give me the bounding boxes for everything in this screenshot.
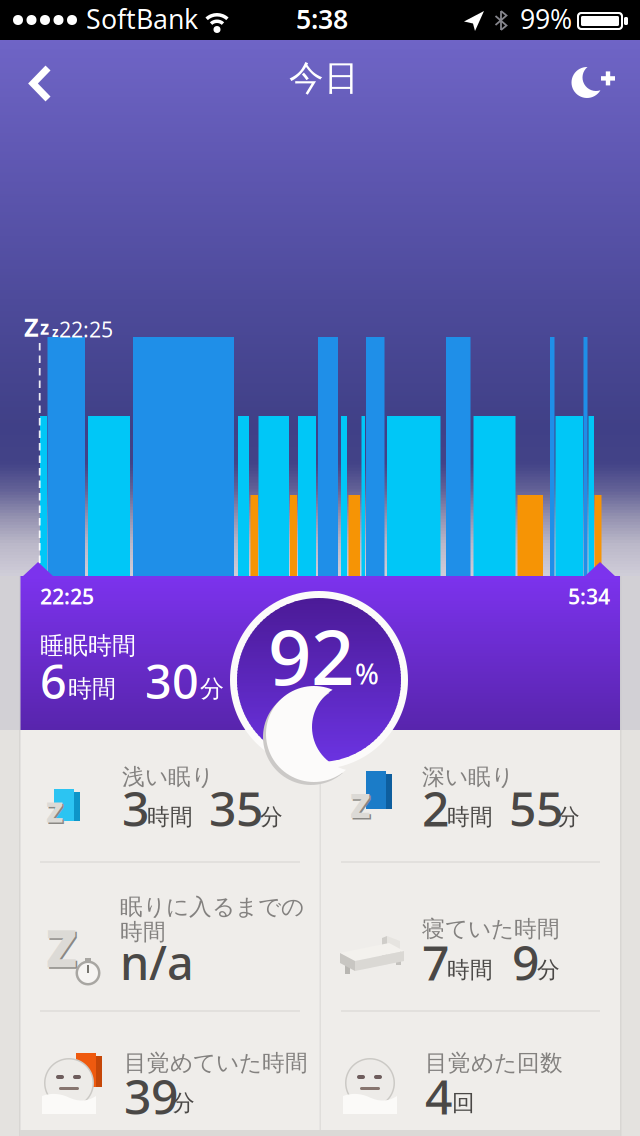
staticText: 浅い眠り	[122, 763, 214, 791]
staticText: Z	[24, 310, 39, 344]
staticText: 寝ていた時間	[422, 915, 560, 943]
staticText: 目覚めていた時間	[124, 1049, 308, 1077]
staticText: 時間	[120, 918, 166, 946]
staticText: 回	[452, 1089, 475, 1117]
staticText: 時間	[147, 803, 193, 831]
staticText: 5:34	[568, 582, 610, 610]
staticText: 分	[537, 956, 560, 984]
staticText: 39	[124, 1064, 178, 1128]
staticText: 22:25	[40, 582, 94, 610]
staticText: %	[355, 655, 379, 692]
staticText: 分	[557, 803, 580, 831]
staticText: 22:25	[59, 315, 113, 343]
staticText: 7	[422, 930, 449, 994]
staticText: 深い眠り	[422, 763, 514, 791]
staticText: Z	[351, 784, 371, 829]
staticText: 目覚めた回数	[425, 1049, 563, 1077]
staticText: 睡眠時間	[40, 631, 136, 660]
staticText: 3	[122, 776, 149, 840]
staticText: 時間	[447, 803, 493, 831]
staticText: 5:38	[296, 1, 348, 36]
staticText: z	[52, 323, 59, 341]
staticText: 35	[209, 776, 263, 840]
staticText: 分	[260, 803, 283, 831]
staticText: 時間	[447, 956, 493, 984]
staticText: 今日	[289, 57, 359, 100]
staticText: 時間	[68, 674, 116, 703]
staticText: SoftBank	[86, 1, 198, 36]
staticText: Z	[47, 915, 78, 983]
button[interactable]	[566, 61, 622, 105]
staticText: 分	[172, 1089, 195, 1117]
staticText: Z	[46, 914, 77, 981]
staticText: 92	[268, 605, 354, 706]
staticText: Z	[47, 794, 64, 832]
staticText: 9	[512, 930, 539, 994]
staticText: n/a	[120, 931, 194, 993]
staticText: 2	[422, 776, 449, 840]
staticText: Z	[350, 783, 370, 827]
staticText: 30	[145, 650, 199, 712]
staticText: 6	[40, 650, 67, 712]
staticText: 分	[200, 674, 224, 703]
staticText: Z	[46, 793, 63, 830]
staticText: 4	[425, 1064, 452, 1128]
staticText: 眠りに入るまでの	[120, 893, 304, 921]
staticText: 55	[509, 776, 563, 840]
button[interactable]	[14, 61, 70, 106]
staticText: z	[40, 315, 49, 340]
staticText: 99%	[520, 1, 572, 36]
